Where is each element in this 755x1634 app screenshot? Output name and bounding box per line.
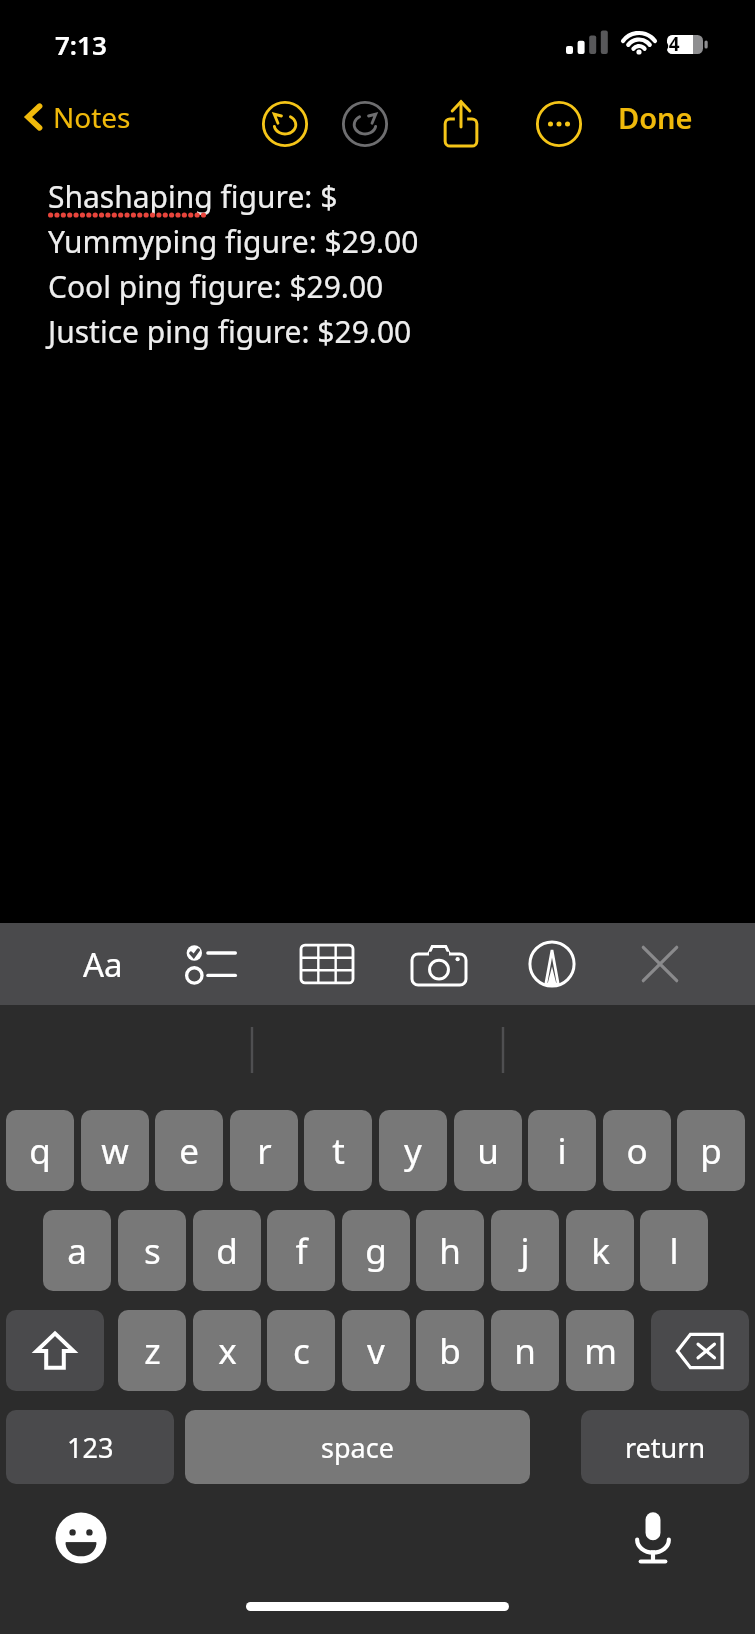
staticText: q	[29, 1127, 51, 1175]
button[interactable]: g	[342, 1210, 410, 1291]
button[interactable]: Shashaping figure: $	[0, 156, 755, 923]
staticText: space	[321, 1429, 394, 1466]
button[interactable]: d	[193, 1210, 261, 1291]
staticText: l	[669, 1227, 679, 1275]
staticText: Cool ping figure: $29.00	[48, 266, 384, 307]
staticText: m	[584, 1327, 617, 1375]
button[interactable]: Notes	[18, 86, 137, 148]
button[interactable]: Emoji keyboard	[48, 1505, 114, 1571]
button[interactable]: o	[603, 1110, 671, 1191]
button[interactable]: i	[528, 1110, 596, 1191]
staticText: s	[144, 1227, 161, 1275]
staticText: o	[626, 1127, 648, 1175]
button[interactable]: f	[267, 1210, 335, 1291]
button[interactable]: a	[43, 1210, 111, 1291]
staticText: k	[591, 1227, 610, 1275]
staticText: d	[216, 1227, 238, 1275]
button[interactable]: Camera	[404, 934, 474, 994]
staticText: 123	[67, 1429, 114, 1466]
staticText: p	[700, 1127, 722, 1175]
staticText: f	[295, 1227, 308, 1275]
button[interactable]: 123	[6, 1410, 174, 1484]
staticText: w	[101, 1127, 129, 1175]
staticText: 7:13	[55, 27, 107, 62]
button[interactable]: h	[416, 1210, 484, 1291]
staticText: i	[557, 1127, 567, 1175]
staticText: 64	[658, 31, 680, 57]
staticText: c	[293, 1327, 310, 1375]
staticText: u	[477, 1127, 499, 1175]
button[interactable]: b	[416, 1310, 484, 1391]
staticText: Yummyping figure: $29.00	[48, 221, 419, 262]
staticText: b	[439, 1327, 461, 1375]
button[interactable]: x	[193, 1310, 261, 1391]
staticText: Justice ping figure: $29.00	[48, 311, 412, 352]
button[interactable]: e	[155, 1110, 223, 1191]
staticText: g	[365, 1227, 387, 1275]
button[interactable]: t	[304, 1110, 372, 1191]
button[interactable]: Aa	[68, 934, 138, 994]
staticText: t	[332, 1127, 345, 1175]
staticText: Notes	[53, 98, 131, 136]
button[interactable]: Close keyboard	[625, 934, 695, 994]
button[interactable]: n	[491, 1310, 559, 1391]
button[interactable]: r	[230, 1110, 298, 1191]
button[interactable]: v	[342, 1310, 410, 1391]
button[interactable]: s	[118, 1210, 186, 1291]
button[interactable]: Markup	[517, 934, 587, 994]
button[interactable]: Dictation	[620, 1505, 686, 1571]
staticText: v	[367, 1327, 385, 1375]
staticText: y	[404, 1127, 422, 1175]
staticText: n	[514, 1327, 536, 1375]
staticText: Shashaping figure: $	[48, 176, 338, 217]
staticText: h	[439, 1227, 461, 1275]
button[interactable]: Backspace	[651, 1310, 749, 1391]
staticText: Done	[618, 98, 693, 137]
button[interactable]: k	[566, 1210, 634, 1291]
button[interactable]: y	[379, 1110, 447, 1191]
button[interactable]: Share	[432, 95, 490, 153]
button[interactable]: u	[454, 1110, 522, 1191]
button[interactable]: Done	[608, 86, 703, 148]
staticText: Aa	[83, 942, 123, 987]
button[interactable]: q	[6, 1110, 74, 1191]
staticText: return	[625, 1429, 706, 1466]
button[interactable]: m	[566, 1310, 634, 1391]
button[interactable]: z	[118, 1310, 186, 1391]
button[interactable]: Redo	[336, 95, 394, 153]
button[interactable]: Checklist	[177, 934, 247, 994]
button[interactable]: More options	[530, 95, 588, 153]
button[interactable]: Table	[292, 934, 362, 994]
staticText: z	[144, 1327, 161, 1375]
button[interactable]: j	[491, 1210, 559, 1291]
staticText: e	[179, 1127, 199, 1175]
staticText: j	[520, 1227, 530, 1275]
button[interactable]: Shift	[6, 1310, 104, 1391]
staticText: r	[257, 1127, 272, 1175]
staticText: a	[67, 1227, 87, 1275]
button[interactable]: p	[677, 1110, 745, 1191]
button[interactable]: c	[267, 1310, 335, 1391]
button[interactable]: l	[640, 1210, 708, 1291]
staticText: x	[218, 1327, 237, 1375]
button[interactable]: space	[185, 1410, 530, 1484]
button[interactable]: w	[81, 1110, 149, 1191]
button[interactable]: return	[581, 1410, 749, 1484]
button[interactable]: Undo	[256, 95, 314, 153]
